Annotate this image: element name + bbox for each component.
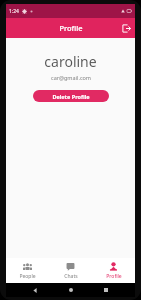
staticText: People	[19, 273, 36, 280]
staticText: Delete Profile	[52, 93, 90, 100]
button[interactable]: Home	[64, 283, 78, 297]
button[interactable]: Back	[28, 283, 42, 297]
staticText: Chats	[64, 273, 78, 280]
button[interactable]: Chats	[49, 258, 92, 283]
button[interactable]: People	[6, 258, 49, 283]
staticText: caroline	[44, 52, 97, 71]
staticText: Profile	[59, 23, 83, 33]
button[interactable]: Log out	[117, 19, 135, 37]
staticText: Profile	[106, 273, 122, 280]
staticText: 1:24	[9, 8, 19, 15]
button[interactable]: Profile	[92, 258, 135, 283]
button[interactable]: Delete Profile	[33, 90, 109, 102]
button[interactable]: Recent apps	[99, 283, 113, 297]
staticText: car@gmail.com	[51, 74, 91, 81]
